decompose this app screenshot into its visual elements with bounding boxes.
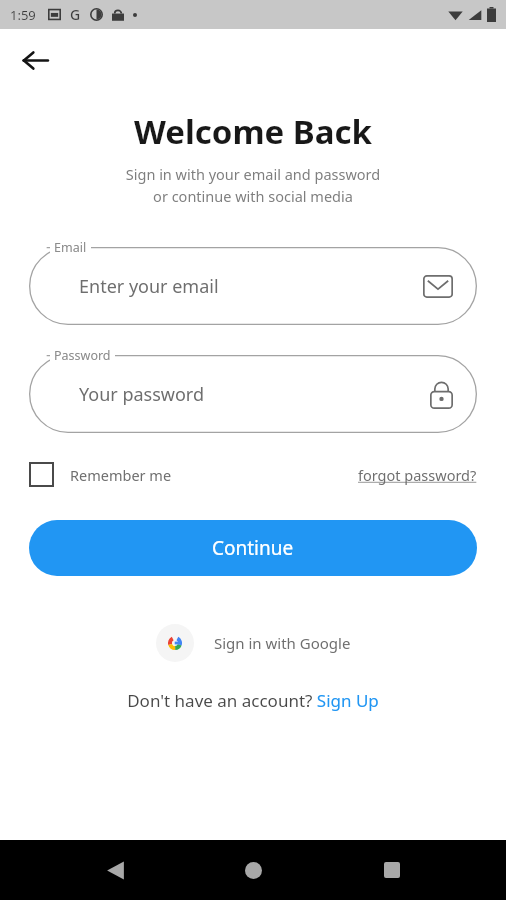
staticText: Your password (79, 382, 205, 407)
button[interactable]: Back (91, 846, 139, 894)
button[interactable]: Your password (29, 355, 477, 433)
button[interactable]: Remember me (29, 462, 172, 487)
staticText: Sign in with Google (214, 633, 351, 653)
staticText: Password (54, 347, 111, 364)
button[interactable]: forgot password? (358, 465, 477, 485)
staticText: Continue (212, 535, 294, 561)
staticText: Email (54, 239, 87, 256)
button[interactable]: Sign in with Google (0, 624, 506, 662)
button[interactable]: Recents (368, 846, 416, 894)
staticText: Welcome Back (0, 109, 506, 154)
button[interactable]: Continue (29, 520, 477, 576)
button[interactable]: Back (12, 37, 58, 83)
staticText: Sign in with your email and password or … (0, 164, 506, 206)
button[interactable]: Don't have an account? Sign Up (0, 689, 506, 712)
staticText: Remember me (70, 465, 172, 485)
staticText: Don't have an account? Sign Up (127, 689, 379, 712)
button[interactable]: Home (229, 846, 277, 894)
staticText: G (70, 5, 81, 24)
staticText: forgot password? (358, 465, 477, 485)
button[interactable]: Enter your email (29, 247, 477, 325)
staticText: 1:59 (10, 6, 36, 24)
staticText: Enter your email (79, 274, 219, 299)
